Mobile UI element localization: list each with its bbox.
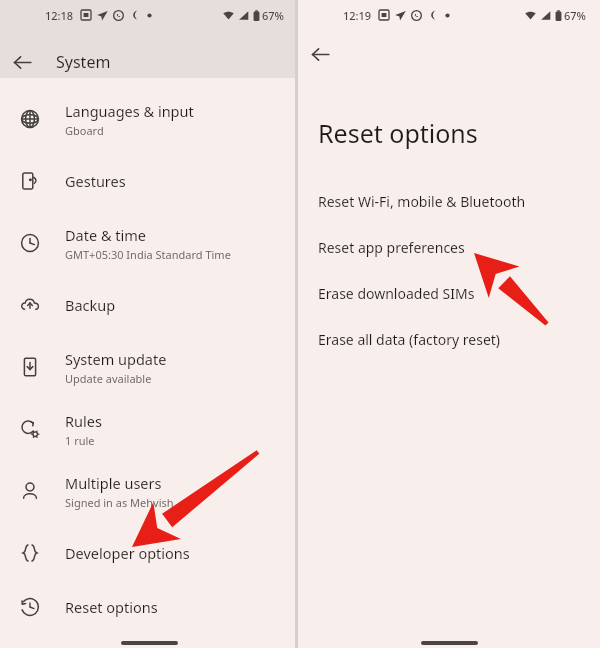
staticText: GMT+05:30 India Standard Time bbox=[65, 247, 231, 262]
staticText: Gboard bbox=[65, 123, 104, 138]
staticText: Erase downloaded SIMs bbox=[318, 284, 475, 303]
staticText: Developer options bbox=[65, 543, 190, 563]
staticText: Gestures bbox=[65, 171, 126, 191]
button[interactable]: Erase all data (factory reset) bbox=[298, 316, 600, 362]
staticText: Date & time bbox=[65, 225, 146, 245]
button[interactable]: Rules bbox=[0, 398, 298, 460]
button[interactable]: Gestures bbox=[0, 150, 298, 212]
button[interactable]: System update bbox=[0, 336, 298, 398]
staticText: Reset app preferences bbox=[318, 238, 465, 257]
staticText: 12:19 bbox=[343, 8, 372, 23]
staticText: 67% bbox=[262, 8, 284, 23]
staticText: Rules bbox=[65, 411, 102, 431]
button[interactable]: Reset app preferences bbox=[298, 224, 600, 270]
staticText: Backup bbox=[65, 295, 116, 315]
button[interactable]: Date & time bbox=[0, 212, 298, 274]
button[interactable]: Backup bbox=[0, 274, 298, 336]
staticText: 67% bbox=[564, 8, 586, 23]
button[interactable]: Reset options bbox=[0, 584, 298, 630]
staticText: Erase all data (factory reset) bbox=[318, 330, 501, 349]
staticText: System update bbox=[65, 349, 167, 369]
button[interactable]: Reset Wi-Fi, mobile & Bluetooth bbox=[298, 178, 600, 224]
staticText: Reset options bbox=[318, 116, 478, 150]
staticText: Signed in as Mehvish bbox=[65, 495, 174, 510]
staticText: Languages & input bbox=[65, 101, 194, 121]
button[interactable]: Multiple users bbox=[0, 460, 298, 522]
button[interactable]: Back bbox=[298, 32, 342, 76]
button[interactable]: Languages & input bbox=[0, 88, 298, 150]
button[interactable]: Back bbox=[0, 40, 44, 84]
button[interactable]: Erase downloaded SIMs bbox=[298, 270, 600, 316]
staticText: 12:18 bbox=[45, 8, 74, 23]
staticText: 1 rule bbox=[65, 433, 95, 448]
staticText: Update available bbox=[65, 371, 152, 386]
staticText: Multiple users bbox=[65, 473, 162, 493]
staticText: System bbox=[56, 51, 111, 73]
button[interactable]: Developer options bbox=[0, 522, 298, 584]
staticText: Reset options bbox=[65, 597, 158, 617]
staticText: Reset Wi-Fi, mobile & Bluetooth bbox=[318, 192, 526, 211]
